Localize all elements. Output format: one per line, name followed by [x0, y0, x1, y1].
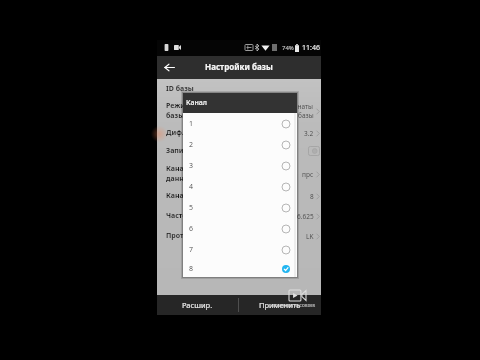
- button[interactable]: 5: [183, 197, 297, 218]
- staticText: 11:46: [302, 43, 320, 53]
- staticText: AZ SCREEN RECORDER: [272, 303, 316, 308]
- button[interactable]: Back: [159, 56, 179, 79]
- button[interactable]: 6: [183, 218, 297, 239]
- button[interactable]: Канал: [157, 187, 321, 205]
- staticText: 3.2: [304, 129, 314, 138]
- staticText: 1: [189, 119, 194, 129]
- button[interactable]: Применить: [239, 295, 321, 315]
- staticText: 7: [189, 245, 194, 255]
- staticText: ID базы: [166, 84, 194, 94]
- staticText: Частота: [166, 211, 195, 221]
- staticText: LK: [306, 232, 314, 241]
- staticText: 2: [189, 140, 194, 150]
- staticText: данных: [166, 174, 194, 184]
- staticText: 6: [189, 224, 194, 234]
- staticText: Канал: [166, 164, 189, 174]
- staticText: Настройки базы: [205, 61, 273, 72]
- button[interactable]: Записывать: [157, 142, 321, 160]
- button[interactable]: Частота: [157, 207, 321, 225]
- staticText: Канал: [166, 191, 189, 201]
- button[interactable]: 1: [183, 113, 297, 134]
- staticText: 3: [189, 161, 194, 171]
- staticText: Канал: [186, 98, 207, 108]
- staticText: прс: [302, 170, 314, 179]
- button[interactable]: Режим: [157, 99, 321, 123]
- button[interactable]: 3: [183, 155, 297, 176]
- staticText: базы: [298, 111, 314, 120]
- button[interactable]: 7: [183, 239, 297, 260]
- staticText: Режим: [166, 101, 191, 111]
- button[interactable]: ID базы: [157, 80, 321, 98]
- button[interactable]: Протокол: [157, 227, 321, 245]
- staticText: 6.625: [297, 212, 314, 221]
- button[interactable]: 4: [183, 176, 297, 197]
- staticText: Записывать: [166, 146, 210, 156]
- button[interactable]: Диф.: [157, 124, 321, 142]
- button[interactable]: Канал: [157, 162, 321, 186]
- button[interactable]: 2: [183, 134, 297, 155]
- button[interactable]: Расшир.: [157, 295, 238, 315]
- staticText: 4: [189, 182, 194, 192]
- staticText: 8: [310, 192, 314, 201]
- staticText: Применить: [259, 300, 301, 310]
- button[interactable]: 8: [183, 260, 297, 277]
- staticText: 74%: [282, 44, 294, 52]
- staticText: 8: [189, 264, 194, 274]
- staticText: базы: [166, 111, 185, 121]
- staticText: Расшир.: [182, 300, 213, 310]
- staticText: Координаты: [274, 102, 314, 111]
- staticText: 5: [189, 203, 194, 213]
- staticText: Диф.: [166, 128, 184, 138]
- staticText: Протокол: [166, 231, 201, 241]
